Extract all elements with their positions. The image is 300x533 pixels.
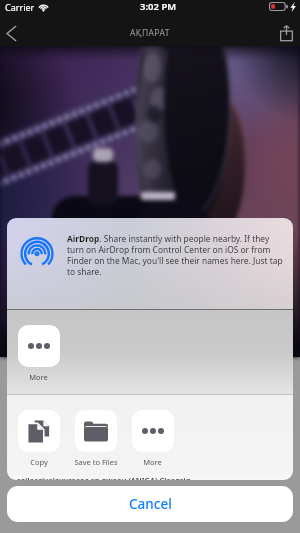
button[interactable]: More (10, 325, 67, 382)
staticText: More (29, 372, 48, 382)
button[interactable]: Back (0, 20, 34, 46)
staticText: Save to Files (74, 457, 118, 467)
button[interactable]: Copy (10, 410, 67, 467)
button[interactable]: More (124, 410, 181, 467)
staticText: Copy (30, 457, 48, 467)
staticText: Carrier (5, 1, 35, 13)
staticText: АҚПАРАТ (130, 27, 170, 39)
staticText: More (143, 457, 162, 467)
staticText: soilaaciyalayuraaoc an gwoou (ANIGA) Cle… (17, 475, 191, 480)
button[interactable]: Cancel (7, 486, 293, 522)
button[interactable]: Save to Files (67, 410, 124, 467)
staticText: 3:02 PM (140, 0, 177, 13)
staticText: AirDrop. Share instantly with people nea… (67, 233, 286, 277)
staticText: Cancel (129, 495, 172, 513)
button[interactable]: Share (266, 20, 300, 46)
